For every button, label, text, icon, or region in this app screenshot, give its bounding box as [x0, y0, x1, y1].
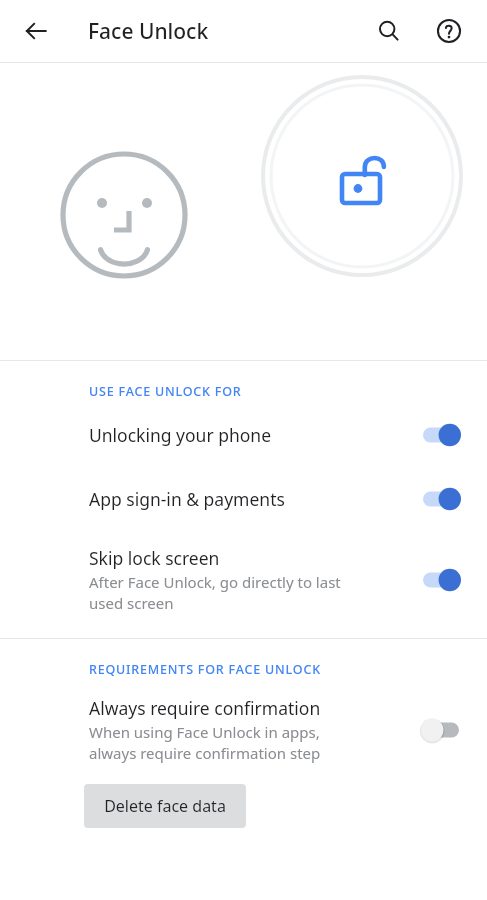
- button[interactable]: Delete face data: [84, 784, 246, 828]
- staticText: USE FACE UNLOCK FOR: [89, 383, 242, 400]
- staticText: REQUIREMENTS FOR FACE UNLOCK: [89, 661, 321, 678]
- button[interactable]: Help: [427, 9, 471, 53]
- button[interactable]: Unlocking your phone: [0, 402, 487, 466]
- staticText: App sign-in & payments: [89, 487, 285, 511]
- staticText: Always require confirmation: [89, 696, 321, 720]
- button[interactable]: Skip lock screen: [0, 530, 487, 628]
- button[interactable]: On: [417, 563, 465, 597]
- staticText: Face Unlock: [88, 17, 209, 46]
- button[interactable]: On: [417, 482, 465, 516]
- staticText: Unlocking your phone: [89, 423, 272, 447]
- button[interactable]: Always require confirmation: [0, 680, 487, 778]
- button[interactable]: On: [417, 418, 465, 452]
- button[interactable]: Off: [417, 713, 465, 747]
- staticText: When using Face Unlock in apps, always r…: [89, 722, 321, 764]
- staticText: Delete face data: [104, 795, 226, 817]
- button[interactable]: App sign-in & payments: [0, 466, 487, 530]
- staticText: Skip lock screen: [89, 546, 220, 570]
- button[interactable]: Back: [14, 9, 58, 53]
- staticText: After Face Unlock, go directly to last u…: [89, 572, 341, 614]
- button[interactable]: Search: [367, 9, 411, 53]
